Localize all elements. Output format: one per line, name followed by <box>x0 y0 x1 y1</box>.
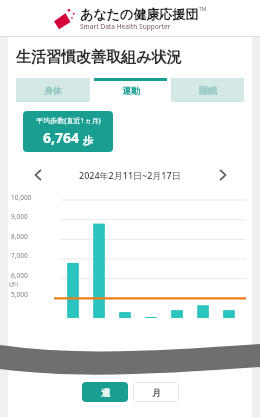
staticText: 身体 <box>44 85 62 96</box>
staticText: 週 <box>101 387 110 398</box>
staticText: 生活習慣改善取組み状況 <box>16 48 182 67</box>
staticText: 9,000 <box>11 212 28 221</box>
staticText: 6,000 <box>11 271 28 280</box>
button[interactable]: 平均歩数(直近1ヵ月) <box>23 111 113 152</box>
button[interactable]: 月 <box>133 382 179 402</box>
staticText: Smart Data Health Supporter <box>80 22 171 31</box>
button[interactable]: 運動 <box>94 78 167 102</box>
button[interactable]: 身体 <box>16 78 90 102</box>
button[interactable]: 週 <box>82 382 128 402</box>
staticText: 歩 <box>83 134 93 147</box>
staticText: 睡眠 <box>199 85 217 96</box>
staticText: 5,000 <box>11 290 28 299</box>
staticText: (歩) <box>9 280 18 288</box>
staticText: 運動 <box>122 85 140 96</box>
staticText: 6,764 <box>43 128 80 147</box>
staticText: 8,000 <box>11 232 28 241</box>
button[interactable]: 睡眠 <box>171 78 244 102</box>
button[interactable]: 次の週 <box>212 165 232 185</box>
staticText: 月 <box>152 387 161 398</box>
button[interactable]: 前の週 <box>28 165 48 185</box>
staticText: 2024年2月11日~2月17日 <box>79 169 181 181</box>
staticText: あなたの健康応援団 <box>80 6 199 22</box>
staticText: TM <box>199 6 207 13</box>
staticText: 10,000 <box>11 193 32 202</box>
staticText: 7,000 <box>11 251 28 260</box>
staticText: 平均歩数(直近1ヵ月) <box>36 116 101 126</box>
